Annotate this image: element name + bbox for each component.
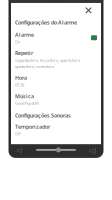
- button[interactable]: Recentes: [87, 145, 99, 155]
- button[interactable]: Temporizador: [15, 119, 50, 136]
- staticText: Configurações Sonoras: [15, 112, 71, 119]
- staticText: ◁: [16, 146, 21, 154]
- button[interactable]: Alarme: [15, 26, 97, 44]
- staticText: Temporizador: [15, 123, 50, 130]
- staticText: quinta-feira, sexta-feira: [15, 64, 54, 69]
- staticText: segunda-feira, terça-feira, quarta-feira: [15, 57, 80, 63]
- staticText: ◁|: [88, 145, 97, 154]
- staticText: On: [15, 39, 20, 44]
- staticText: Configurações do Alarme: [15, 19, 77, 26]
- staticText: Hora: [15, 74, 27, 81]
- staticText: ⌄: [51, 0, 61, 4]
- button[interactable]: Fechar: [83, 5, 94, 16]
- staticText: ✕: [84, 4, 93, 16]
- staticText: 07:30: [15, 82, 24, 87]
- staticText: Alarme: [15, 31, 34, 38]
- button[interactable]: Voltar: [13, 145, 25, 155]
- staticText: Música: [15, 92, 34, 100]
- staticText: Off: [15, 131, 21, 136]
- button[interactable]: Repetir: [15, 44, 80, 69]
- staticText: Repetir: [15, 49, 33, 56]
- button[interactable]: Hora: [15, 69, 27, 87]
- button[interactable]: Música: [15, 87, 39, 106]
- staticText: Good Pop AM: [15, 101, 39, 106]
